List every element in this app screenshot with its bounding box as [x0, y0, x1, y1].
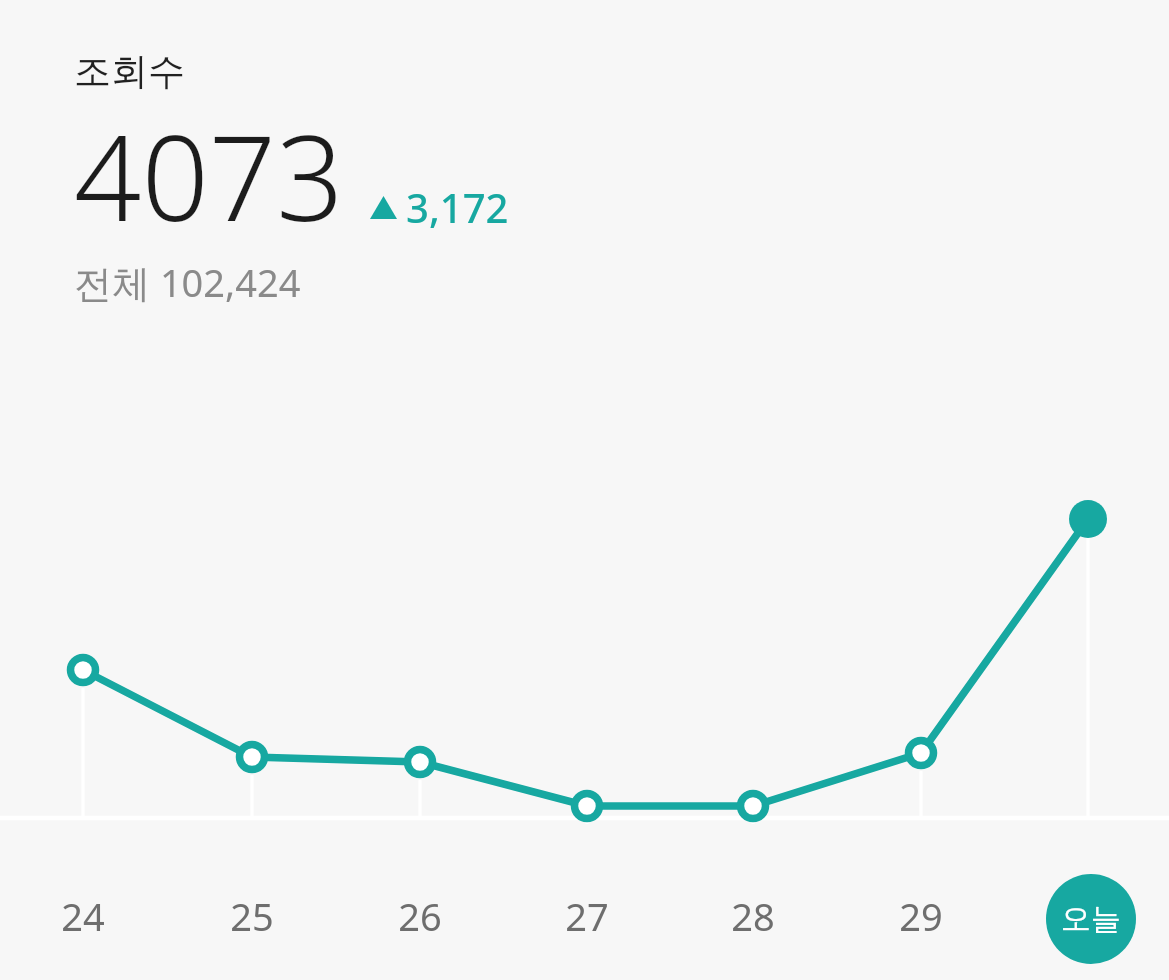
staticText: 29 [899, 890, 943, 940]
staticText: 24 [61, 890, 105, 940]
button[interactable]: 26 [380, 890, 460, 940]
button[interactable]: 27 [547, 890, 627, 940]
staticText: 전체 102,424 [74, 256, 301, 308]
button[interactable]: 25 [212, 890, 292, 940]
staticText: 오늘 [1061, 900, 1121, 938]
staticText: 27 [565, 890, 609, 940]
staticText: 26 [398, 890, 442, 940]
staticText: 28 [731, 890, 775, 940]
staticText: 조회수 [74, 48, 185, 95]
staticText: 3,172 [406, 180, 509, 234]
button[interactable]: 오늘 [1046, 874, 1136, 964]
button[interactable]: 24 [43, 890, 123, 940]
staticText: 4073 [74, 95, 344, 256]
button[interactable]: 28 [713, 890, 793, 940]
button[interactable]: 29 [881, 890, 961, 940]
staticText: 25 [230, 890, 274, 940]
